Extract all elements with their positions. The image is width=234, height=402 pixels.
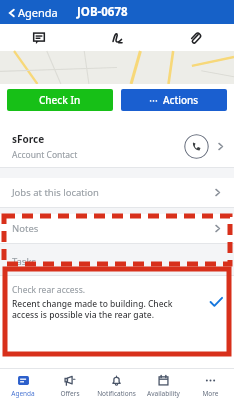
button[interactable]: Jobs at this location [0, 178, 234, 207]
button[interactable]: Offers [46, 369, 93, 402]
button[interactable]: Notes [0, 214, 234, 243]
button[interactable]: Messages [0, 24, 78, 51]
button[interactable]: Actions [121, 89, 227, 111]
staticText: Availability [147, 389, 180, 398]
button[interactable]: sForce [0, 125, 234, 167]
staticText: Agenda [18, 5, 58, 20]
staticText: Check rear access. [12, 284, 86, 296]
button[interactable]: Task complete [208, 294, 224, 310]
staticText: Notifications [97, 389, 136, 398]
button[interactable]: More [187, 369, 234, 402]
button[interactable]: Check rear access. [0, 276, 234, 329]
staticText: Agenda [11, 389, 35, 398]
staticText: Actions [163, 93, 199, 107]
staticText: More [202, 389, 219, 398]
button[interactable]: Availability [140, 369, 187, 402]
staticText: Jobs at this location [12, 186, 212, 199]
button[interactable]: Attachments [156, 24, 234, 51]
staticText: Offers [60, 389, 80, 398]
staticText: Notes [12, 222, 212, 235]
button[interactable]: Call [184, 134, 209, 159]
button[interactable]: Agenda [0, 369, 46, 402]
button[interactable]: Signature [78, 24, 156, 51]
button[interactable]: Notifications [93, 369, 140, 402]
staticText: sForce [12, 132, 45, 146]
staticText: Check In [39, 93, 81, 107]
staticText: Recent change made to building. Check ac… [12, 298, 200, 320]
button[interactable]: Check In [7, 89, 113, 111]
button[interactable]: Back to Agenda [5, 3, 60, 22]
staticText: Account Contact [12, 149, 78, 161]
staticText: JOB-0678 [77, 4, 128, 20]
staticText: Tasks [12, 255, 37, 268]
